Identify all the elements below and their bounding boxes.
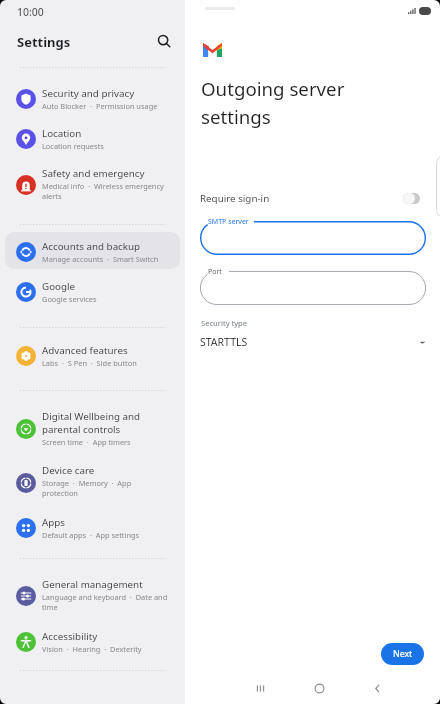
staticText: General management xyxy=(42,578,143,591)
staticText: Location requests xyxy=(42,141,104,151)
staticText: Auto Blocker · Permission usage xyxy=(42,101,158,111)
staticText: Safety and emergency xyxy=(42,167,145,180)
staticText: Google services xyxy=(42,294,97,304)
staticText: Storage · Memory · App protection xyxy=(42,478,132,498)
staticText: 10:00 xyxy=(17,5,44,19)
staticText: Settings xyxy=(17,33,71,51)
button[interactable]: Search xyxy=(153,30,175,52)
staticText: Advanced features xyxy=(42,344,128,357)
button[interactable]: Security and privacy xyxy=(5,79,180,116)
staticText: Accessibility xyxy=(42,630,98,643)
staticText: Security type xyxy=(201,318,248,328)
button[interactable] xyxy=(200,271,426,305)
staticText: Outgoing server settings xyxy=(201,76,345,129)
staticText: Language and keyboard · Date and time xyxy=(42,592,168,612)
staticText: Screen time · App timers xyxy=(42,437,131,447)
button[interactable]: Next xyxy=(381,643,424,665)
staticText: SMTP server xyxy=(208,217,249,227)
button[interactable]: Home xyxy=(305,674,333,702)
button[interactable]: General management xyxy=(5,570,180,618)
staticText: Apps xyxy=(42,516,66,529)
button[interactable]: Back xyxy=(363,674,391,702)
button[interactable]: Google xyxy=(5,272,180,309)
button[interactable]: Require sign-in xyxy=(200,185,420,211)
staticText: Vision · Hearing · Dexterity xyxy=(42,644,142,654)
button[interactable] xyxy=(200,221,426,255)
staticText: Manage accounts · Smart Switch xyxy=(42,254,159,264)
button[interactable]: Digital Wellbeing and parental controls xyxy=(5,402,180,450)
staticText: Google xyxy=(42,280,76,293)
button[interactable]: Recents xyxy=(246,674,274,702)
button[interactable]: Accessibility xyxy=(5,622,180,659)
staticText: Security and privacy xyxy=(42,87,135,100)
staticText: Next xyxy=(393,648,413,660)
button[interactable]: Accounts and backup xyxy=(5,232,180,269)
staticText: Require sign-in xyxy=(200,192,270,205)
button[interactable]: Advanced features xyxy=(5,336,180,373)
button[interactable]: Apps xyxy=(5,508,180,545)
staticText: STARTTLS xyxy=(200,335,248,349)
button[interactable]: STARTTLS xyxy=(200,333,426,351)
staticText: Medical info · Wireless emergency alerts xyxy=(42,181,164,201)
staticText: Port xyxy=(208,267,222,277)
button[interactable]: Safety and emergency xyxy=(5,159,180,207)
staticText: Digital Wellbeing and parental controls xyxy=(42,410,141,436)
staticText: Labs · S Pen · Side button xyxy=(42,358,137,368)
staticText: Location xyxy=(42,127,82,140)
staticText: Accounts and backup xyxy=(42,240,141,253)
staticText: Device care xyxy=(42,464,95,477)
staticText: Default apps · App settings xyxy=(42,530,140,540)
button[interactable]: Device care xyxy=(5,456,180,504)
button[interactable]: Location xyxy=(5,119,180,156)
